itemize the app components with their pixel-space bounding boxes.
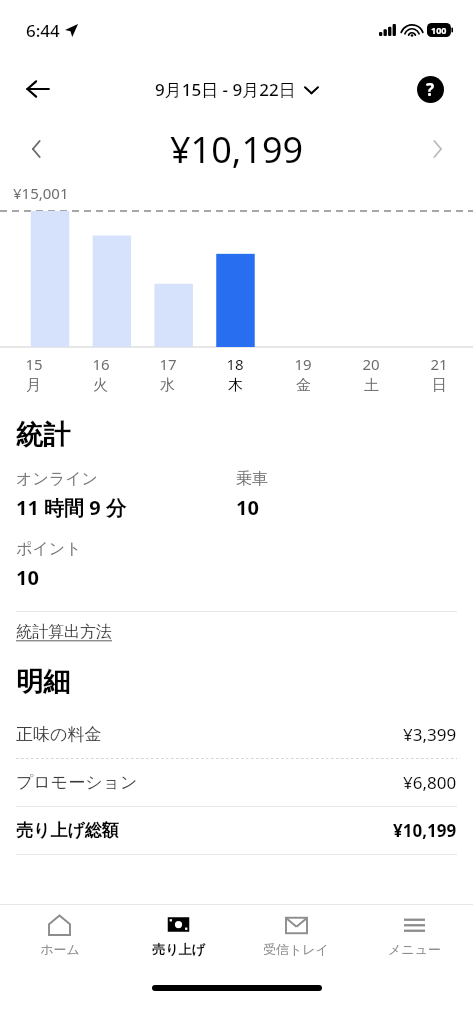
button[interactable]: 受信トレイ	[237, 905, 355, 968]
staticText: 金	[296, 376, 311, 395]
staticText: 19	[294, 354, 312, 374]
button[interactable]: Back	[14, 65, 62, 113]
staticText: 売り上げ総額	[16, 820, 393, 841]
staticText: 日	[432, 376, 447, 395]
button[interactable]: メニュー	[355, 905, 473, 968]
staticText: ポイント	[16, 539, 82, 559]
staticText: 統計	[16, 418, 70, 452]
staticText: 正味の料金	[16, 724, 403, 745]
button[interactable]: 統計算出方法	[16, 622, 112, 642]
button[interactable]: Previous week	[16, 129, 56, 169]
staticText: 9月15日 - 9月22日	[155, 78, 296, 101]
button[interactable]: 売り上げ	[119, 905, 237, 968]
button[interactable]: Next week	[417, 129, 457, 169]
staticText: 明細	[16, 665, 70, 699]
staticText: ¥10,199	[170, 125, 304, 174]
staticText: 統計算出方法	[16, 622, 112, 642]
staticText: 16	[92, 354, 110, 374]
staticText: オンライン	[16, 469, 98, 489]
staticText: 21	[430, 354, 448, 374]
staticText: 15	[25, 354, 43, 374]
staticText: ¥6,800	[403, 771, 457, 794]
staticText: 17	[159, 354, 177, 374]
staticText: 18	[226, 354, 244, 374]
staticText: ¥10,199	[393, 819, 457, 842]
staticText: 6:44	[26, 19, 60, 42]
staticText: 乗車	[236, 469, 268, 489]
button[interactable]: ホーム	[0, 905, 119, 968]
staticText: ¥3,399	[403, 723, 457, 746]
staticText: ホーム	[40, 941, 80, 957]
staticText: 売り上げ	[152, 941, 205, 957]
staticText: 土	[364, 376, 379, 395]
staticText: 受信トレイ	[263, 941, 329, 957]
button[interactable]: Help	[408, 67, 452, 111]
staticText: プロモーション	[16, 772, 403, 793]
staticText: 100	[431, 24, 447, 36]
staticText: 10	[16, 564, 39, 591]
button[interactable]: 売り上げ総額	[16, 807, 457, 854]
staticText: 10	[236, 494, 259, 521]
staticText: 水	[160, 376, 175, 395]
button[interactable]: 9月15日 - 9月22日	[155, 78, 318, 101]
staticText: メニュー	[388, 941, 441, 957]
button[interactable]: 正味の料金	[16, 711, 457, 758]
staticText: ?	[426, 78, 435, 101]
staticText: 木	[228, 376, 243, 395]
staticText: 11 時間 9 分	[16, 494, 126, 521]
staticText: 月	[26, 376, 41, 395]
button[interactable]: プロモーション	[16, 759, 457, 806]
staticText: ¥15,001	[13, 183, 69, 203]
staticText: 20	[362, 354, 380, 374]
staticText: 火	[93, 376, 108, 395]
